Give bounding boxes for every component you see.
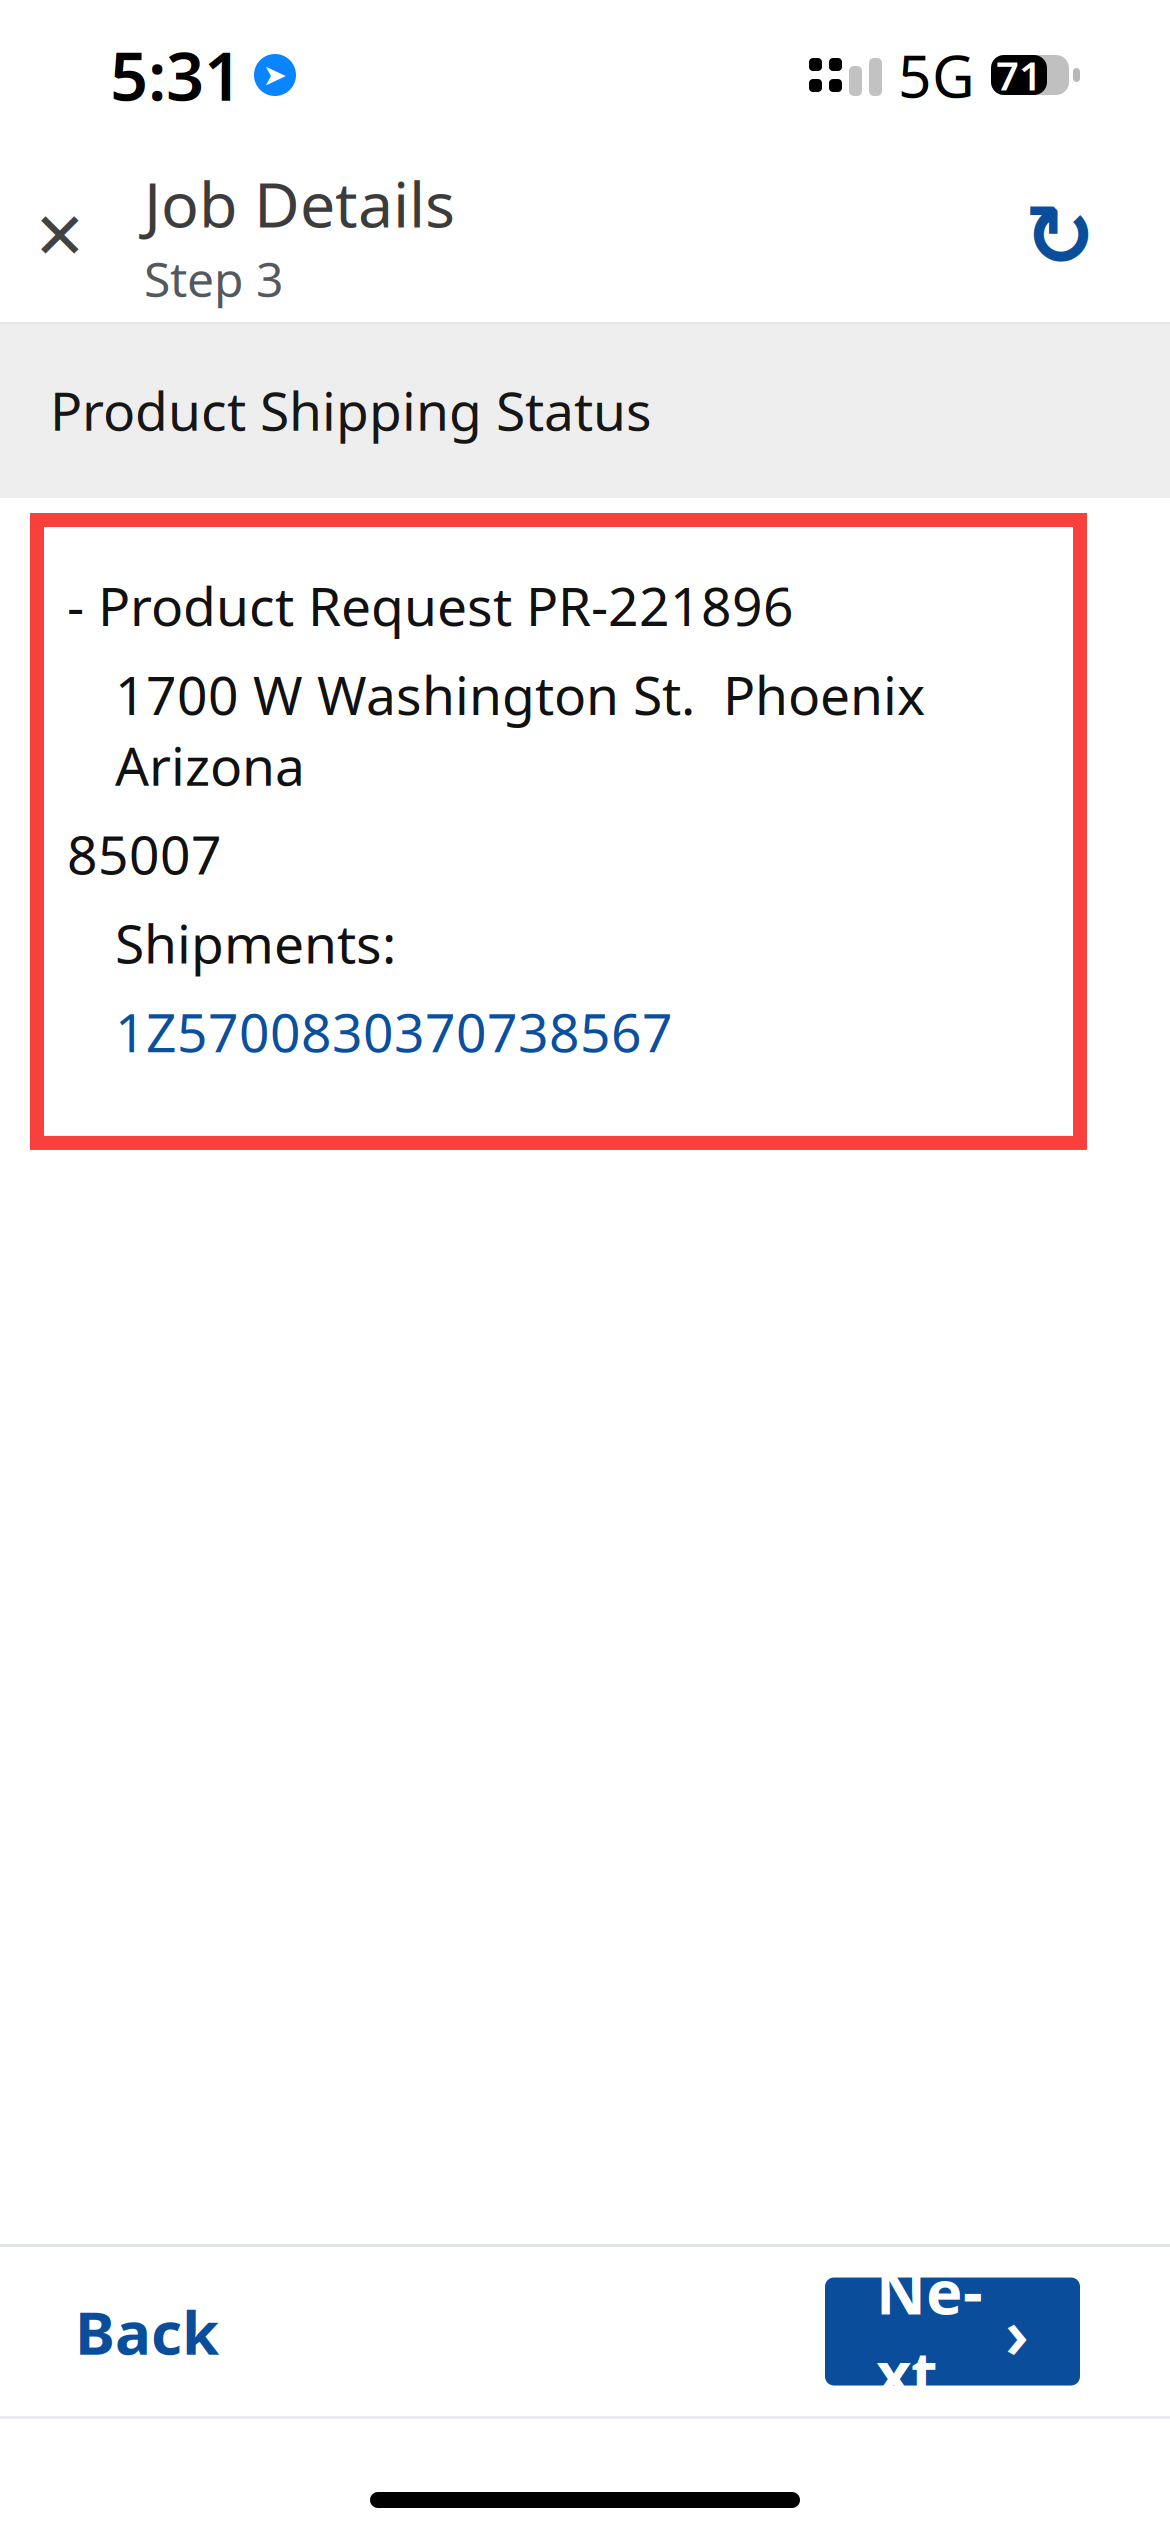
staticText: ›	[1005, 2285, 1029, 2378]
staticText: Job Details	[144, 161, 455, 245]
button[interactable]: Next	[825, 2277, 1080, 2385]
staticText: Shipments:	[115, 907, 396, 978]
staticText: 1700 W Washington St. Phoenix Arizona	[115, 659, 925, 800]
button[interactable]: Refresh	[995, 161, 1125, 311]
staticText: 85007	[67, 818, 222, 889]
button[interactable]: 1Z5700830370738567	[115, 996, 673, 1067]
staticText: - Product Request PR-221896	[67, 570, 794, 641]
staticText: 71	[996, 48, 1042, 101]
staticText: 5:31	[110, 31, 242, 119]
staticText: Product Shipping Status	[50, 375, 652, 445]
staticText: ✕	[33, 200, 87, 272]
staticText: ➤	[262, 58, 287, 92]
button[interactable]: Back	[49, 2266, 245, 2397]
staticText: Back	[75, 2292, 219, 2371]
staticText: ↻	[1024, 188, 1096, 284]
staticText: Next	[876, 2250, 983, 2413]
button[interactable]: Close	[0, 161, 120, 311]
staticText: 5G	[898, 36, 975, 114]
staticText: Step 3	[144, 247, 283, 310]
staticText: 1Z5700830370738567	[115, 996, 673, 1067]
